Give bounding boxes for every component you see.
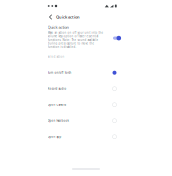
staticText: Open Camera	[47, 103, 65, 106]
button[interactable]: Open Camera	[42, 97, 130, 113]
staticText: Open app	[47, 135, 61, 138]
staticText: Quick action	[47, 24, 68, 30]
staticText: Record audio	[47, 87, 66, 90]
button[interactable]: Open Facebook	[42, 113, 130, 129]
staticText: Select action	[47, 55, 64, 58]
button[interactable]: Record audio	[42, 81, 130, 97]
button[interactable]: Open app	[42, 129, 130, 145]
button[interactable]: Back	[47, 13, 53, 21]
button[interactable]: Turn on/off Torch	[42, 65, 130, 81]
staticText: Open Facebook	[47, 119, 68, 122]
button[interactable]: Enable quick action	[112, 34, 122, 43]
staticText: Turn on/off Torch	[47, 71, 71, 74]
staticText: Quick action	[56, 14, 80, 20]
staticText: Make an action on off your unit into the…	[47, 31, 103, 49]
